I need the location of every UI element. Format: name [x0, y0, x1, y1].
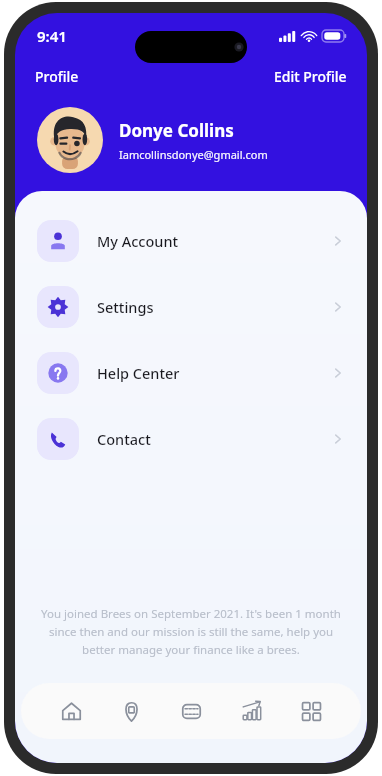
button[interactable]: Contact [15, 406, 367, 472]
staticText: Edit Profile [274, 67, 347, 86]
staticText: Donye Collins [119, 119, 234, 142]
staticText: My Account [97, 231, 179, 251]
button[interactable]: Settings [15, 274, 367, 340]
button[interactable]: Statistics [227, 687, 275, 735]
button[interactable]: More [287, 687, 335, 735]
button[interactable]: Places [107, 687, 155, 735]
button[interactable]: Home [47, 687, 95, 735]
staticText: Iamcollinsdonye@gmail.com [119, 147, 268, 162]
staticText: Profile [35, 67, 79, 86]
staticText: 9:41 [37, 26, 67, 46]
button[interactable]: Cards [167, 687, 215, 735]
button[interactable]: Help Center [15, 340, 367, 406]
staticText: Settings [97, 297, 154, 317]
button[interactable]: My Account [15, 208, 367, 274]
button[interactable]: Edit Profile [274, 67, 347, 86]
button[interactable] [37, 107, 103, 173]
staticText: Help Center [97, 363, 180, 383]
button[interactable]: Profile [35, 67, 79, 86]
staticText: Contact [97, 429, 151, 449]
staticText: You joined Brees on September 2021. It's… [41, 606, 341, 657]
